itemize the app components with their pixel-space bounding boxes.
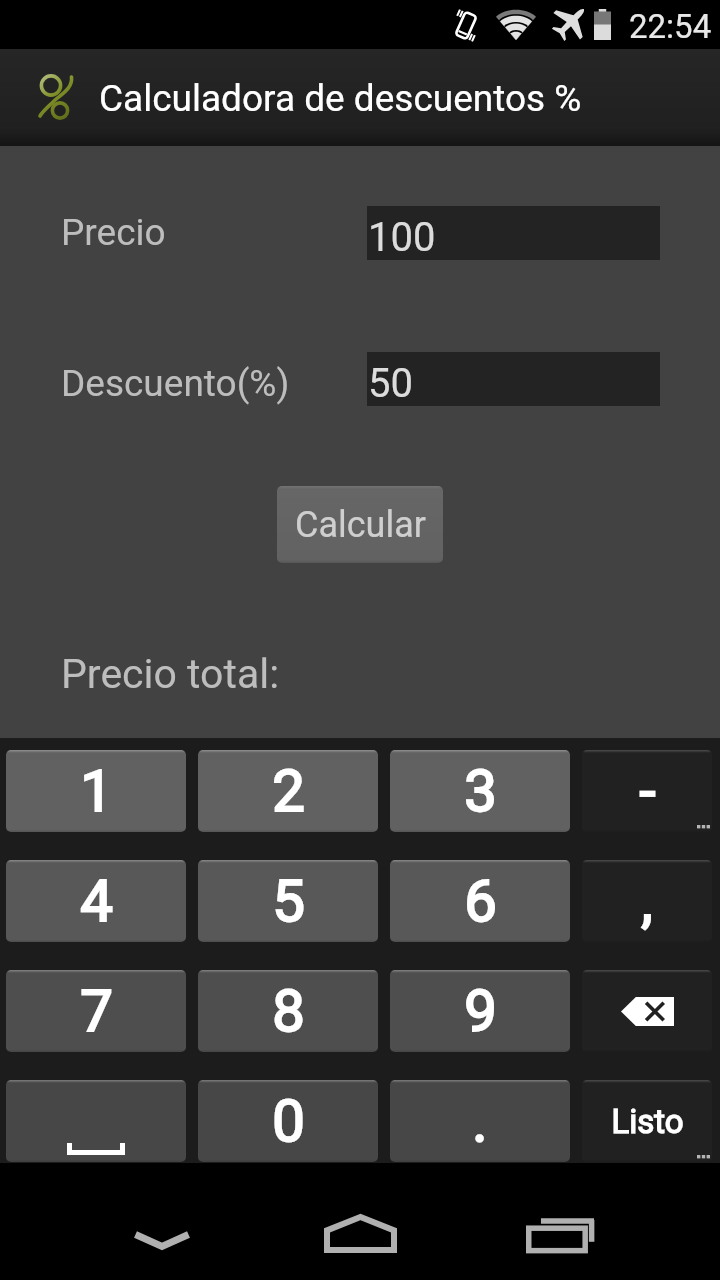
button[interactable]: Hide keyboard	[92, 1163, 232, 1280]
staticText: 8	[272, 977, 305, 1045]
button[interactable]: 3	[390, 750, 570, 832]
button[interactable]: 0	[198, 1080, 378, 1162]
button[interactable]: 6	[390, 860, 570, 942]
button[interactable]: Recent apps	[490, 1163, 630, 1280]
button[interactable]: 1	[6, 750, 186, 832]
button[interactable]: 7	[6, 970, 186, 1052]
button[interactable]: 5	[198, 860, 378, 942]
staticText: .	[472, 1087, 488, 1155]
staticText: 7	[80, 977, 113, 1045]
staticText: -	[639, 757, 656, 825]
staticText: 9	[464, 977, 497, 1045]
staticText: 50	[368, 360, 413, 407]
staticText: 2	[272, 757, 305, 825]
staticText: Listo	[611, 1102, 684, 1141]
staticText: 6	[464, 867, 497, 935]
button[interactable]: 100	[367, 206, 660, 260]
button[interactable]: 9	[390, 970, 570, 1052]
staticText: ,	[641, 867, 653, 935]
button[interactable]: Delete	[582, 970, 712, 1052]
staticText: 100	[368, 214, 436, 261]
staticText: Descuento(%)	[61, 362, 290, 405]
staticText: Calcular	[295, 504, 426, 546]
button[interactable]: Space	[6, 1080, 186, 1162]
button[interactable]: Listo	[582, 1080, 712, 1162]
button[interactable]: .	[390, 1080, 570, 1162]
button[interactable]: ,	[582, 860, 712, 942]
staticText: 3	[464, 757, 497, 825]
staticText: 22:54	[629, 7, 712, 46]
staticText: 5	[272, 867, 305, 935]
staticText: 1	[80, 757, 113, 825]
staticText: 0	[272, 1087, 305, 1155]
staticText: 4	[80, 867, 113, 935]
button[interactable]: -	[582, 750, 712, 832]
other: Delete	[621, 997, 674, 1026]
other: Space	[67, 1143, 125, 1155]
button[interactable]: Calcular	[277, 486, 443, 563]
button[interactable]: 2	[198, 750, 378, 832]
staticText: Precio	[61, 211, 166, 254]
button[interactable]: 4	[6, 860, 186, 942]
button[interactable]: 8	[198, 970, 378, 1052]
button[interactable]: 50	[367, 352, 660, 406]
staticText: Calculadora de descuentos %	[99, 77, 582, 120]
staticText: Precio total:	[61, 650, 280, 698]
button[interactable]: Home	[290, 1163, 430, 1280]
